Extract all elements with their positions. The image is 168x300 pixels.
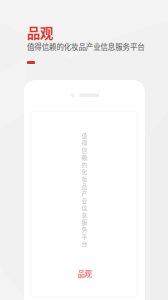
staticText: 妆 — [81, 175, 87, 183]
staticText: 平 — [81, 232, 87, 240]
staticText: 值得信赖的化妆品产业信息服务平台 — [27, 41, 144, 52]
staticText: 品观 — [77, 268, 91, 279]
staticText: 值 — [81, 131, 87, 140]
staticText: 务 — [81, 225, 87, 233]
staticText: 的 — [81, 160, 87, 168]
staticText: 品观 — [27, 23, 53, 42]
staticText: 信 — [81, 146, 87, 154]
staticText: 赖 — [81, 153, 87, 161]
staticText: 息 — [81, 211, 87, 219]
staticText: 信 — [81, 203, 87, 212]
staticText: 台 — [81, 239, 87, 248]
staticText: 得 — [81, 139, 87, 147]
staticText: 产 — [81, 189, 87, 197]
staticText: 化 — [81, 167, 87, 176]
staticText: 服 — [81, 218, 87, 226]
staticText: 业 — [81, 196, 87, 204]
staticText: 品 — [81, 182, 87, 190]
